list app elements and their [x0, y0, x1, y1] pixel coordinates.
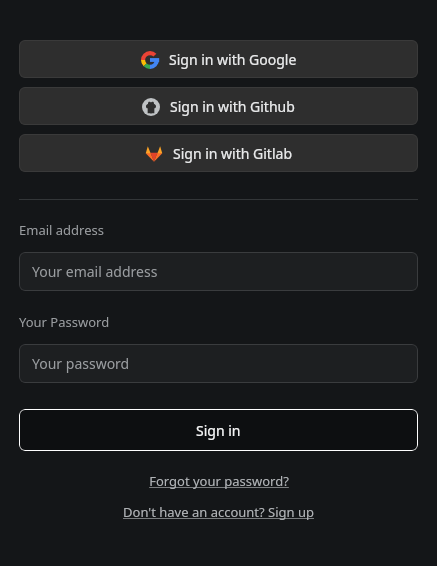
button[interactable]: Sign in with Google	[19, 40, 418, 78]
staticText: Sign in with Google	[169, 50, 297, 69]
staticText: Your Password	[19, 313, 110, 331]
staticText: Don't have an account? Sign up	[123, 503, 314, 521]
button[interactable]: Sign in with Github	[19, 87, 418, 125]
staticText: Email address	[19, 221, 104, 239]
staticText: Forgot your password?	[149, 472, 289, 490]
button[interactable]: Your email address	[19, 252, 418, 291]
button[interactable]: Don't have an account? Sign up	[119, 501, 318, 523]
button[interactable]: Your password	[19, 344, 418, 383]
staticText: Sign in with Gitlab	[173, 144, 292, 163]
staticText: Sign in with Github	[170, 97, 295, 116]
button[interactable]: Forgot your password?	[145, 470, 293, 492]
button[interactable]: Sign in with Gitlab	[19, 134, 418, 172]
button[interactable]: Sign in	[19, 409, 418, 451]
staticText: Your password	[32, 354, 130, 373]
staticText: Your email address	[32, 262, 158, 281]
staticText: Sign in	[196, 421, 241, 440]
